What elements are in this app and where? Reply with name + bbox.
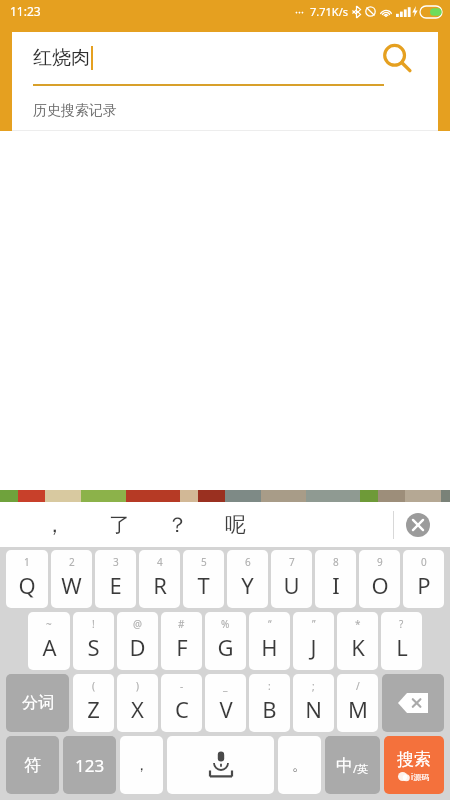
staticText: 。 [292,756,307,775]
staticText: 4 [157,555,163,569]
staticText: U [283,570,300,600]
staticText: S [87,632,100,662]
staticText: 2 [69,555,75,569]
staticText: 123 [75,754,105,777]
staticText: 11:23 [10,3,41,19]
button[interactable]: 9 [359,550,400,608]
staticText: L [396,632,408,662]
staticText: 3 [113,555,119,569]
button[interactable]: 符 [6,736,59,794]
staticText: X [131,694,144,724]
staticText: ( [92,679,95,693]
staticText: M [348,694,368,724]
staticText: 红烧肉 [33,46,90,70]
staticText: D [129,632,146,662]
staticText: Z [87,694,100,724]
staticText: ! [92,617,95,631]
button[interactable]: * [337,612,378,670]
staticText: 搜索 [397,749,431,770]
button[interactable]: ) [117,674,158,732]
button[interactable]: 搜索 [384,736,444,794]
staticText: 历史搜索记录 [33,102,117,120]
staticText: ~ [46,617,52,631]
staticText: 7.71K/s [310,4,348,19]
staticText: K [351,632,365,662]
button[interactable]: 2 [51,550,92,608]
staticText: * [355,617,361,631]
staticText: % [221,617,230,631]
staticText: 0 [421,555,427,569]
button[interactable]: @ [117,612,158,670]
staticText: @ [133,617,142,631]
button[interactable]: _ [205,674,246,732]
button[interactable]: Space, voice input [167,736,274,794]
staticText: # [178,617,185,631]
button[interactable]: Search [377,38,417,78]
button[interactable]: 123 [63,736,116,794]
staticText: C [175,694,189,724]
staticText: G [217,632,234,662]
staticText: F [176,632,188,662]
button[interactable]: 6 [227,550,268,608]
button[interactable]: 了 [90,502,148,547]
staticText: 中 [336,755,353,776]
staticText: 呢 [225,512,246,538]
staticText: ? [399,617,404,631]
button[interactable]: 5 [183,550,224,608]
staticText: : [268,679,271,693]
button[interactable]: ; [293,674,334,732]
staticText: _ [223,679,228,693]
button[interactable]: ” [293,612,334,670]
staticText: E [109,570,122,600]
staticText: B [262,694,277,724]
staticText: ) [136,679,139,693]
button[interactable]: 呢 [206,502,264,547]
button[interactable]: 7 [271,550,312,608]
staticText: A [42,632,57,662]
staticText: 分词 [22,693,54,713]
staticText: 7 [289,555,295,569]
button[interactable]: # [161,612,202,670]
button[interactable]: - [161,674,202,732]
button[interactable]: 分词 [6,674,69,732]
button[interactable]: ! [73,612,114,670]
staticText: 9 [377,555,383,569]
staticText: N [305,694,322,724]
staticText: 5 [201,555,207,569]
staticText: - [180,679,184,693]
staticText: J [310,632,317,662]
staticText: I [332,570,340,600]
staticText: ; [312,679,315,693]
button[interactable]: ~ [28,612,70,670]
button[interactable]: ， [18,502,90,547]
staticText: V [219,694,233,724]
button[interactable]: % [205,612,246,670]
staticText: 了 [109,512,130,538]
staticText: 6 [245,555,251,569]
button[interactable]: : [249,674,290,732]
staticText: “ [268,617,272,631]
button[interactable]: 中 [325,736,380,794]
button[interactable]: ? [381,612,422,670]
button[interactable]: ， [120,736,163,794]
staticText: ， [44,512,65,538]
button[interactable]: ？ [148,502,206,547]
button[interactable]: 3 [95,550,136,608]
button[interactable]: ( [73,674,114,732]
button[interactable]: “ [249,612,290,670]
button[interactable]: 1 [6,550,48,608]
button[interactable]: 0 [403,550,444,608]
button[interactable]: 。 [278,736,321,794]
button[interactable]: 4 [139,550,180,608]
staticText: R [153,570,167,600]
staticText: /英 [353,761,369,776]
button[interactable]: Close keyboard [394,502,442,547]
button[interactable]: Backspace [382,674,444,732]
button[interactable]: / [337,674,378,732]
staticText: O [371,570,389,600]
button[interactable]: 8 [315,550,356,608]
staticText: H [261,632,278,662]
staticText: 8 [333,555,339,569]
staticText: T [197,570,210,600]
staticText: P [417,570,431,600]
